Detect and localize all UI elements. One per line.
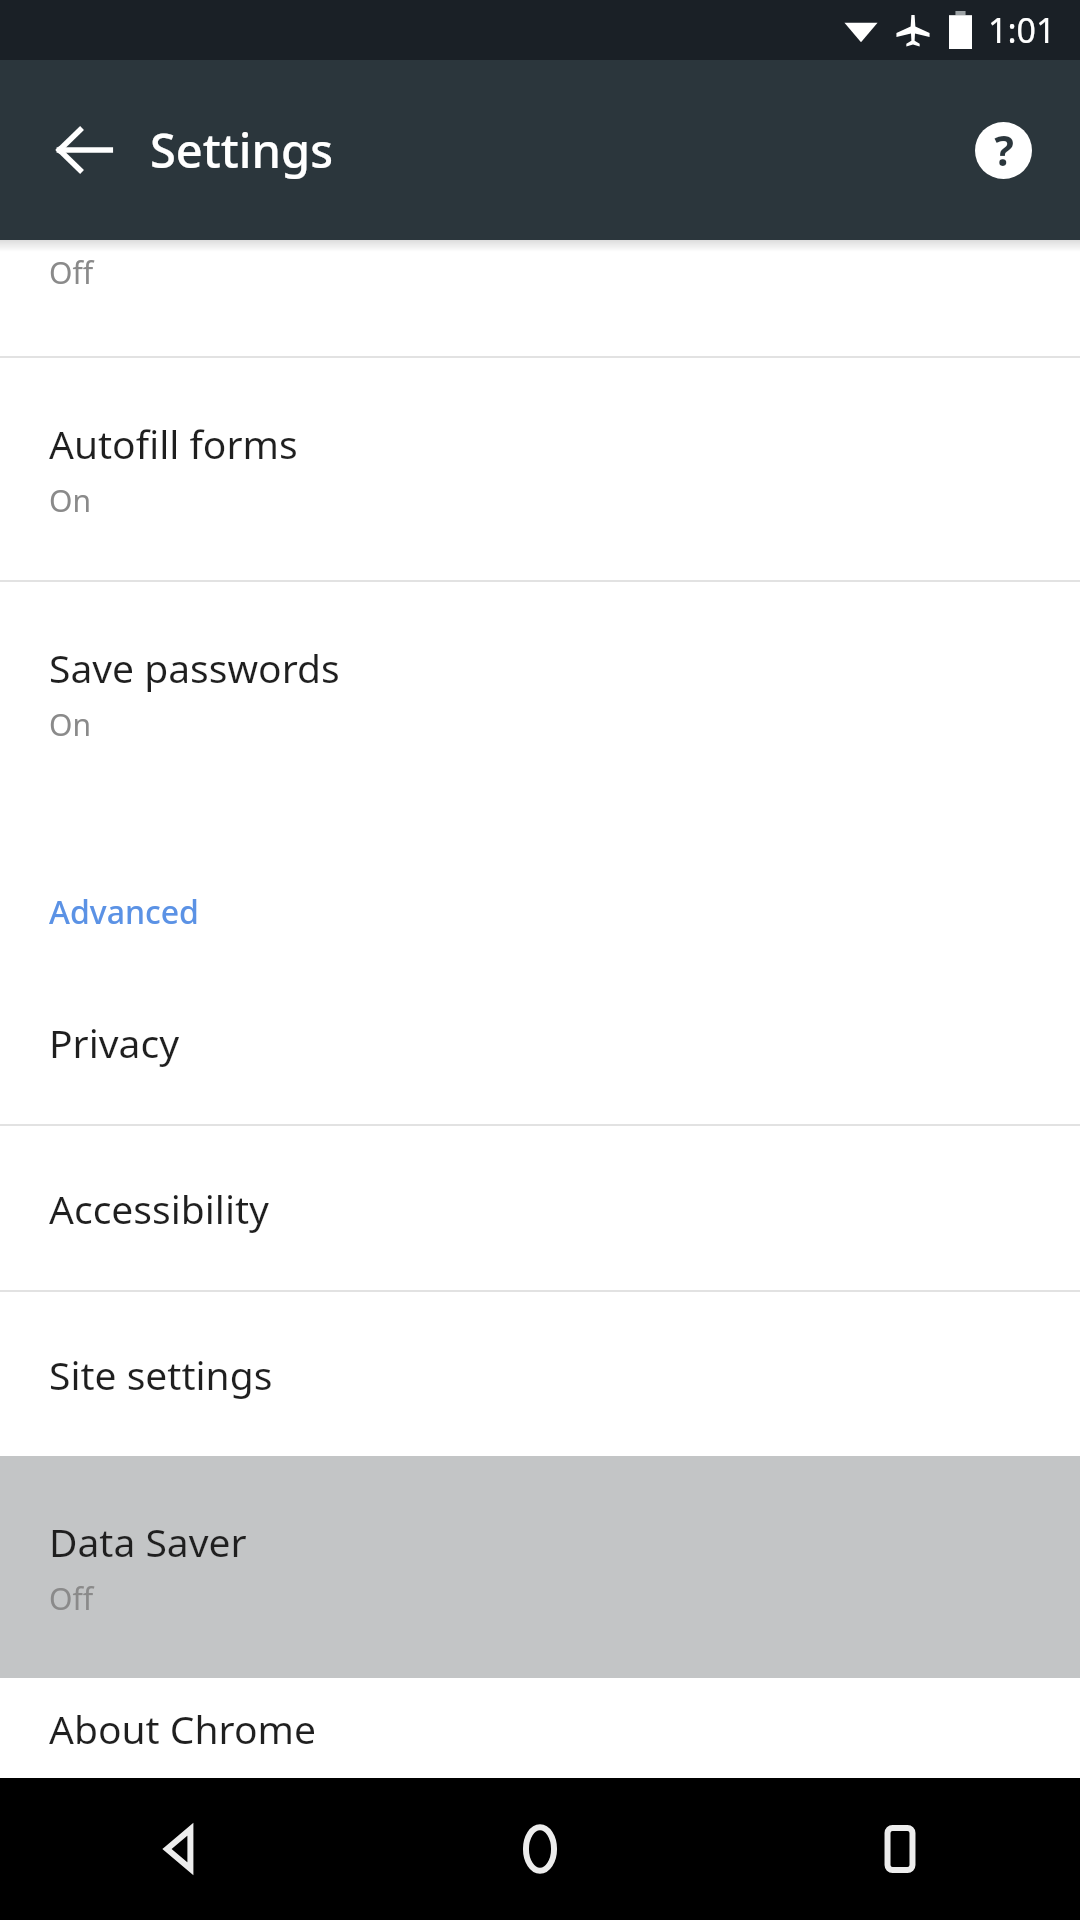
staticText: Privacy — [49, 1016, 180, 1069]
button[interactable]: Save passwords — [0, 582, 1080, 804]
staticText: On — [49, 704, 91, 745]
button[interactable]: Privacy — [0, 960, 1080, 1124]
button[interactable]: Home — [360, 1778, 720, 1920]
button[interactable]: Help — [952, 99, 1054, 201]
staticText: Save passwords — [49, 641, 340, 694]
staticText: Off — [49, 1578, 94, 1619]
button[interactable]: Back — [0, 1778, 360, 1920]
staticText: 1:01 — [988, 7, 1056, 53]
button[interactable]: Recent apps — [720, 1778, 1080, 1920]
staticText: Off — [49, 252, 94, 293]
button[interactable]: Accessibility — [0, 1126, 1080, 1290]
staticText: Settings — [150, 118, 333, 182]
button[interactable]: Off — [0, 240, 1080, 356]
staticText: On — [49, 480, 91, 521]
staticText: Autofill forms — [49, 417, 298, 470]
staticText: Site settings — [49, 1348, 273, 1401]
staticText: Advanced — [49, 890, 199, 934]
staticText: About Chrome — [49, 1702, 316, 1755]
button[interactable]: Site settings — [0, 1292, 1080, 1456]
button[interactable]: Data Saver — [0, 1456, 1080, 1678]
staticText: Data Saver — [49, 1515, 247, 1568]
button[interactable]: About Chrome — [0, 1678, 1080, 1778]
button[interactable]: Back — [28, 94, 140, 206]
button[interactable]: Autofill forms — [0, 358, 1080, 580]
staticText: Accessibility — [49, 1182, 269, 1235]
staticText: ? — [994, 122, 1014, 178]
